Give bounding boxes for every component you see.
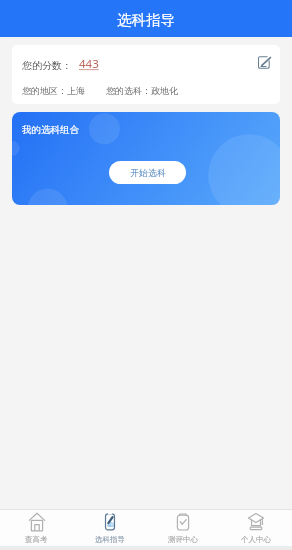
staticText: 测评中心: [168, 535, 198, 544]
button[interactable]: 查高考: [0, 510, 73, 546]
staticText: 您的分数：: [22, 59, 72, 72]
button[interactable]: 开始选科: [109, 161, 186, 184]
staticText: 选科指导: [117, 11, 175, 29]
staticText: 选科指导: [95, 535, 125, 544]
staticText: 您的选科：政地化: [106, 85, 178, 96]
staticText: 443: [79, 56, 99, 72]
staticText: 我的选科组合: [22, 124, 79, 136]
button[interactable]: 测评中心: [146, 510, 219, 546]
staticText: 查高考: [25, 535, 48, 544]
button[interactable]: 个人中心: [219, 510, 292, 546]
staticText: 开始选科: [130, 167, 166, 178]
staticText: 个人中心: [241, 535, 271, 544]
button[interactable]: 选科指导: [73, 510, 146, 546]
staticText: 您的地区：上海: [22, 85, 85, 96]
button[interactable]: Edit: [258, 56, 271, 69]
